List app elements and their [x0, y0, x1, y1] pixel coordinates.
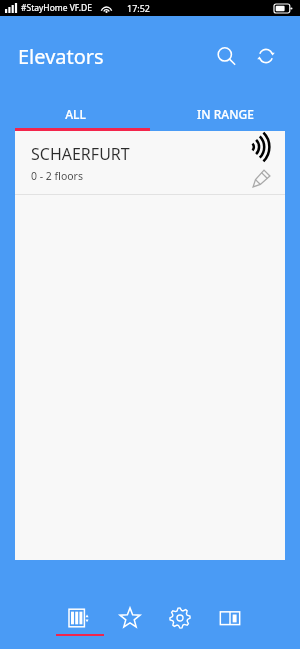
other: In range — [250, 135, 274, 159]
button[interactable]: Search — [206, 36, 246, 76]
button[interactable]: Settings — [155, 595, 205, 649]
staticText: #StayHome VF.DE — [21, 2, 92, 14]
button[interactable]: SCHAERFURT — [15, 131, 285, 194]
button[interactable]: Elevators — [55, 595, 105, 649]
button[interactable]: Favorites — [105, 595, 155, 649]
button[interactable]: Edit — [247, 164, 275, 192]
button[interactable]: IN RANGE — [150, 96, 300, 131]
staticText: 0 - 2 floors — [31, 169, 83, 183]
button[interactable]: Refresh — [246, 36, 286, 76]
staticText: ALL — [65, 106, 86, 122]
staticText: SCHAERFURT — [31, 143, 130, 165]
button[interactable]: Guide — [205, 595, 255, 649]
staticText: 17:52 — [127, 2, 151, 14]
button[interactable]: ALL — [0, 96, 150, 131]
staticText: Elevators — [18, 43, 104, 70]
staticText: IN RANGE — [197, 106, 254, 122]
